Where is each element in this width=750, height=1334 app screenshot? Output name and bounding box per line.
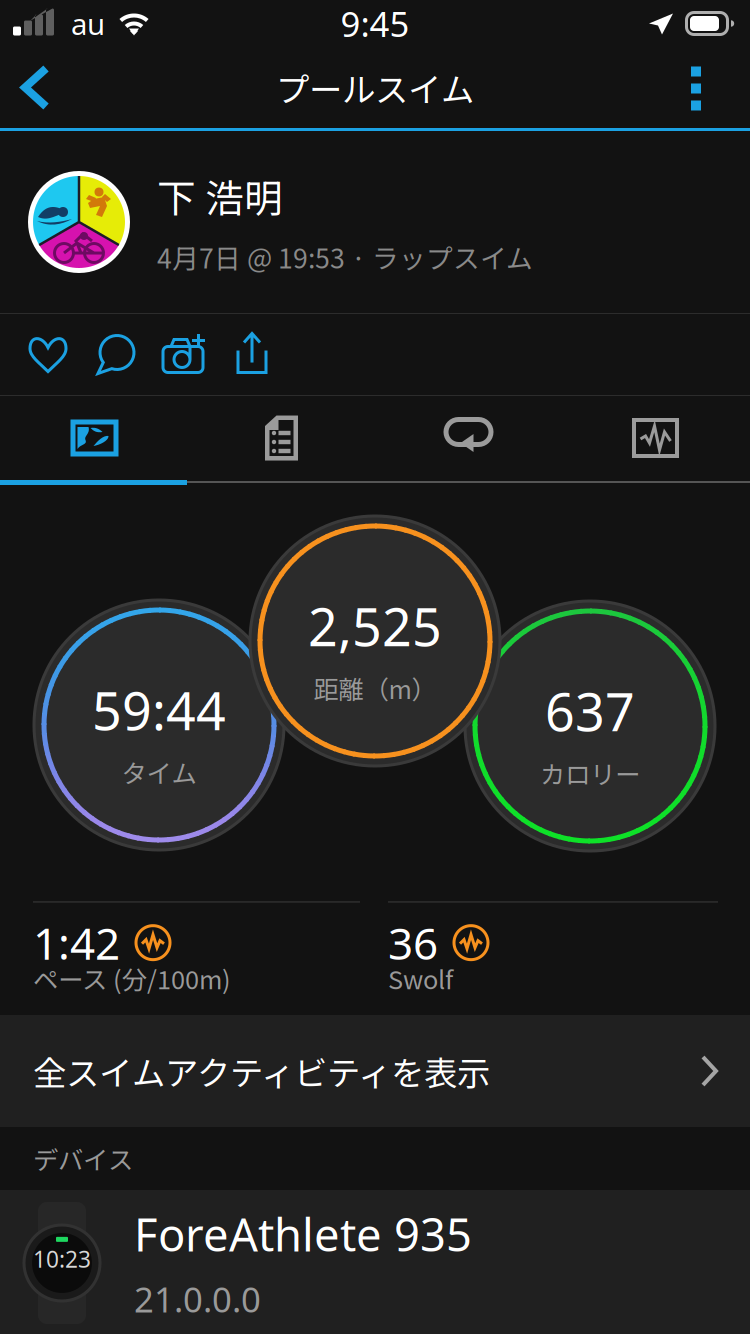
staticText: 2,525 <box>308 592 442 661</box>
staticText: 59:44 <box>92 676 226 745</box>
staticText: 9:45 <box>340 0 409 46</box>
staticText: au <box>71 4 105 43</box>
staticText: 21.0.0.0 <box>134 1276 261 1322</box>
staticText: 10:23 <box>33 1244 91 1274</box>
staticText: 下 浩明 <box>157 168 283 224</box>
staticText: プールスイム <box>276 63 474 112</box>
staticText: ForeAthlete 935 <box>134 1204 472 1264</box>
staticText: カロリー <box>540 755 640 791</box>
button[interactable]: Like <box>14 319 82 389</box>
button[interactable]: Share <box>218 319 286 389</box>
button[interactable]: Comment <box>82 319 150 389</box>
button[interactable]: Laps <box>188 396 375 480</box>
staticText: タイム <box>121 754 196 790</box>
button[interactable]: Charts <box>562 396 749 480</box>
button[interactable]: Back <box>3 55 61 119</box>
staticText: デバイス <box>33 1140 133 1177</box>
button[interactable]: Add photo <box>150 319 218 389</box>
button[interactable]: Intervals <box>375 396 562 480</box>
staticText: 36 <box>388 913 438 972</box>
staticText: 637 <box>545 677 635 746</box>
button[interactable]: 全スイムアクティビティを表示 <box>0 1015 750 1127</box>
staticText: ペース (分/100m) <box>33 960 231 997</box>
staticText: Swolf <box>388 960 453 997</box>
button[interactable]: More options <box>667 55 725 119</box>
staticText: 1:42 <box>33 913 120 972</box>
staticText: 全スイムアクティビティを表示 <box>33 1047 490 1095</box>
button[interactable]: Summary <box>1 396 188 480</box>
staticText: 距離（m） <box>313 670 436 706</box>
staticText: 4月7日 @ 19:53 · ラップスイム <box>157 238 533 276</box>
